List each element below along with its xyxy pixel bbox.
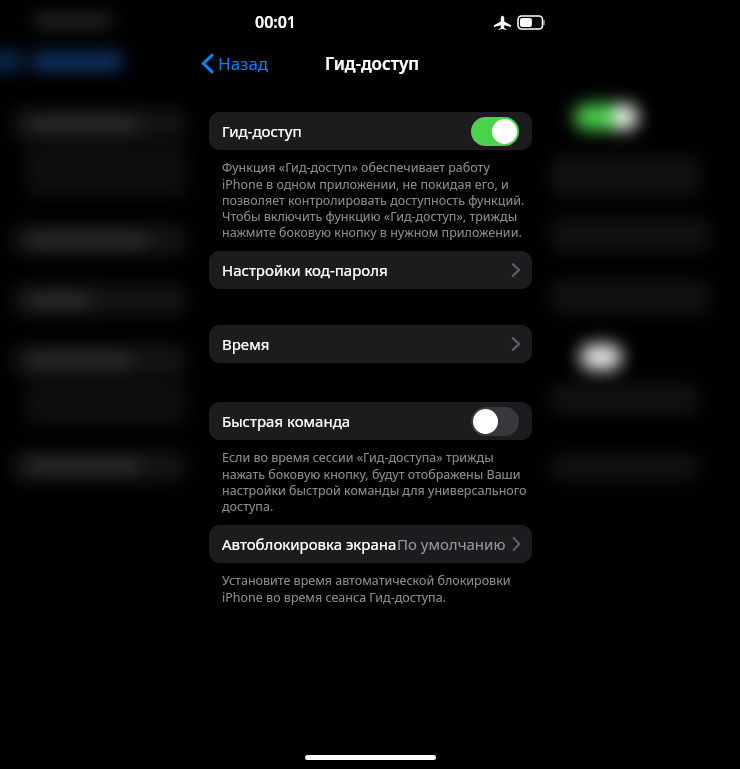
staticText: Гид-доступ [325, 52, 420, 75]
button[interactable]: Включено [471, 117, 519, 146]
button[interactable]: Автоблокировка экрана [209, 525, 532, 563]
button[interactable]: Быстрая команда [209, 402, 532, 440]
button[interactable]: Выключено [471, 407, 519, 436]
staticText: 00:01 [255, 11, 297, 33]
staticText: Функция «Гид-доступ» обеспечивает работу… [222, 159, 530, 240]
staticText: Время [222, 334, 270, 354]
button[interactable]: Гид-доступ [209, 112, 532, 150]
staticText: Если во время сессии «Гид-доступа» трижд… [222, 449, 530, 514]
button[interactable]: Время [209, 325, 532, 363]
button[interactable]: Настройки код-пароля [209, 251, 532, 289]
staticText: Быстрая команда [222, 411, 351, 431]
staticText: По умолчанию [397, 534, 506, 554]
staticText: Назад [218, 52, 269, 75]
staticText: Настройки код-пароля [222, 260, 388, 280]
staticText: Установите время автоматической блокиров… [222, 572, 530, 605]
staticText: Автоблокировка экрана [222, 534, 397, 554]
staticText: Гид-доступ [222, 121, 302, 141]
button[interactable]: Назад [198, 48, 273, 79]
